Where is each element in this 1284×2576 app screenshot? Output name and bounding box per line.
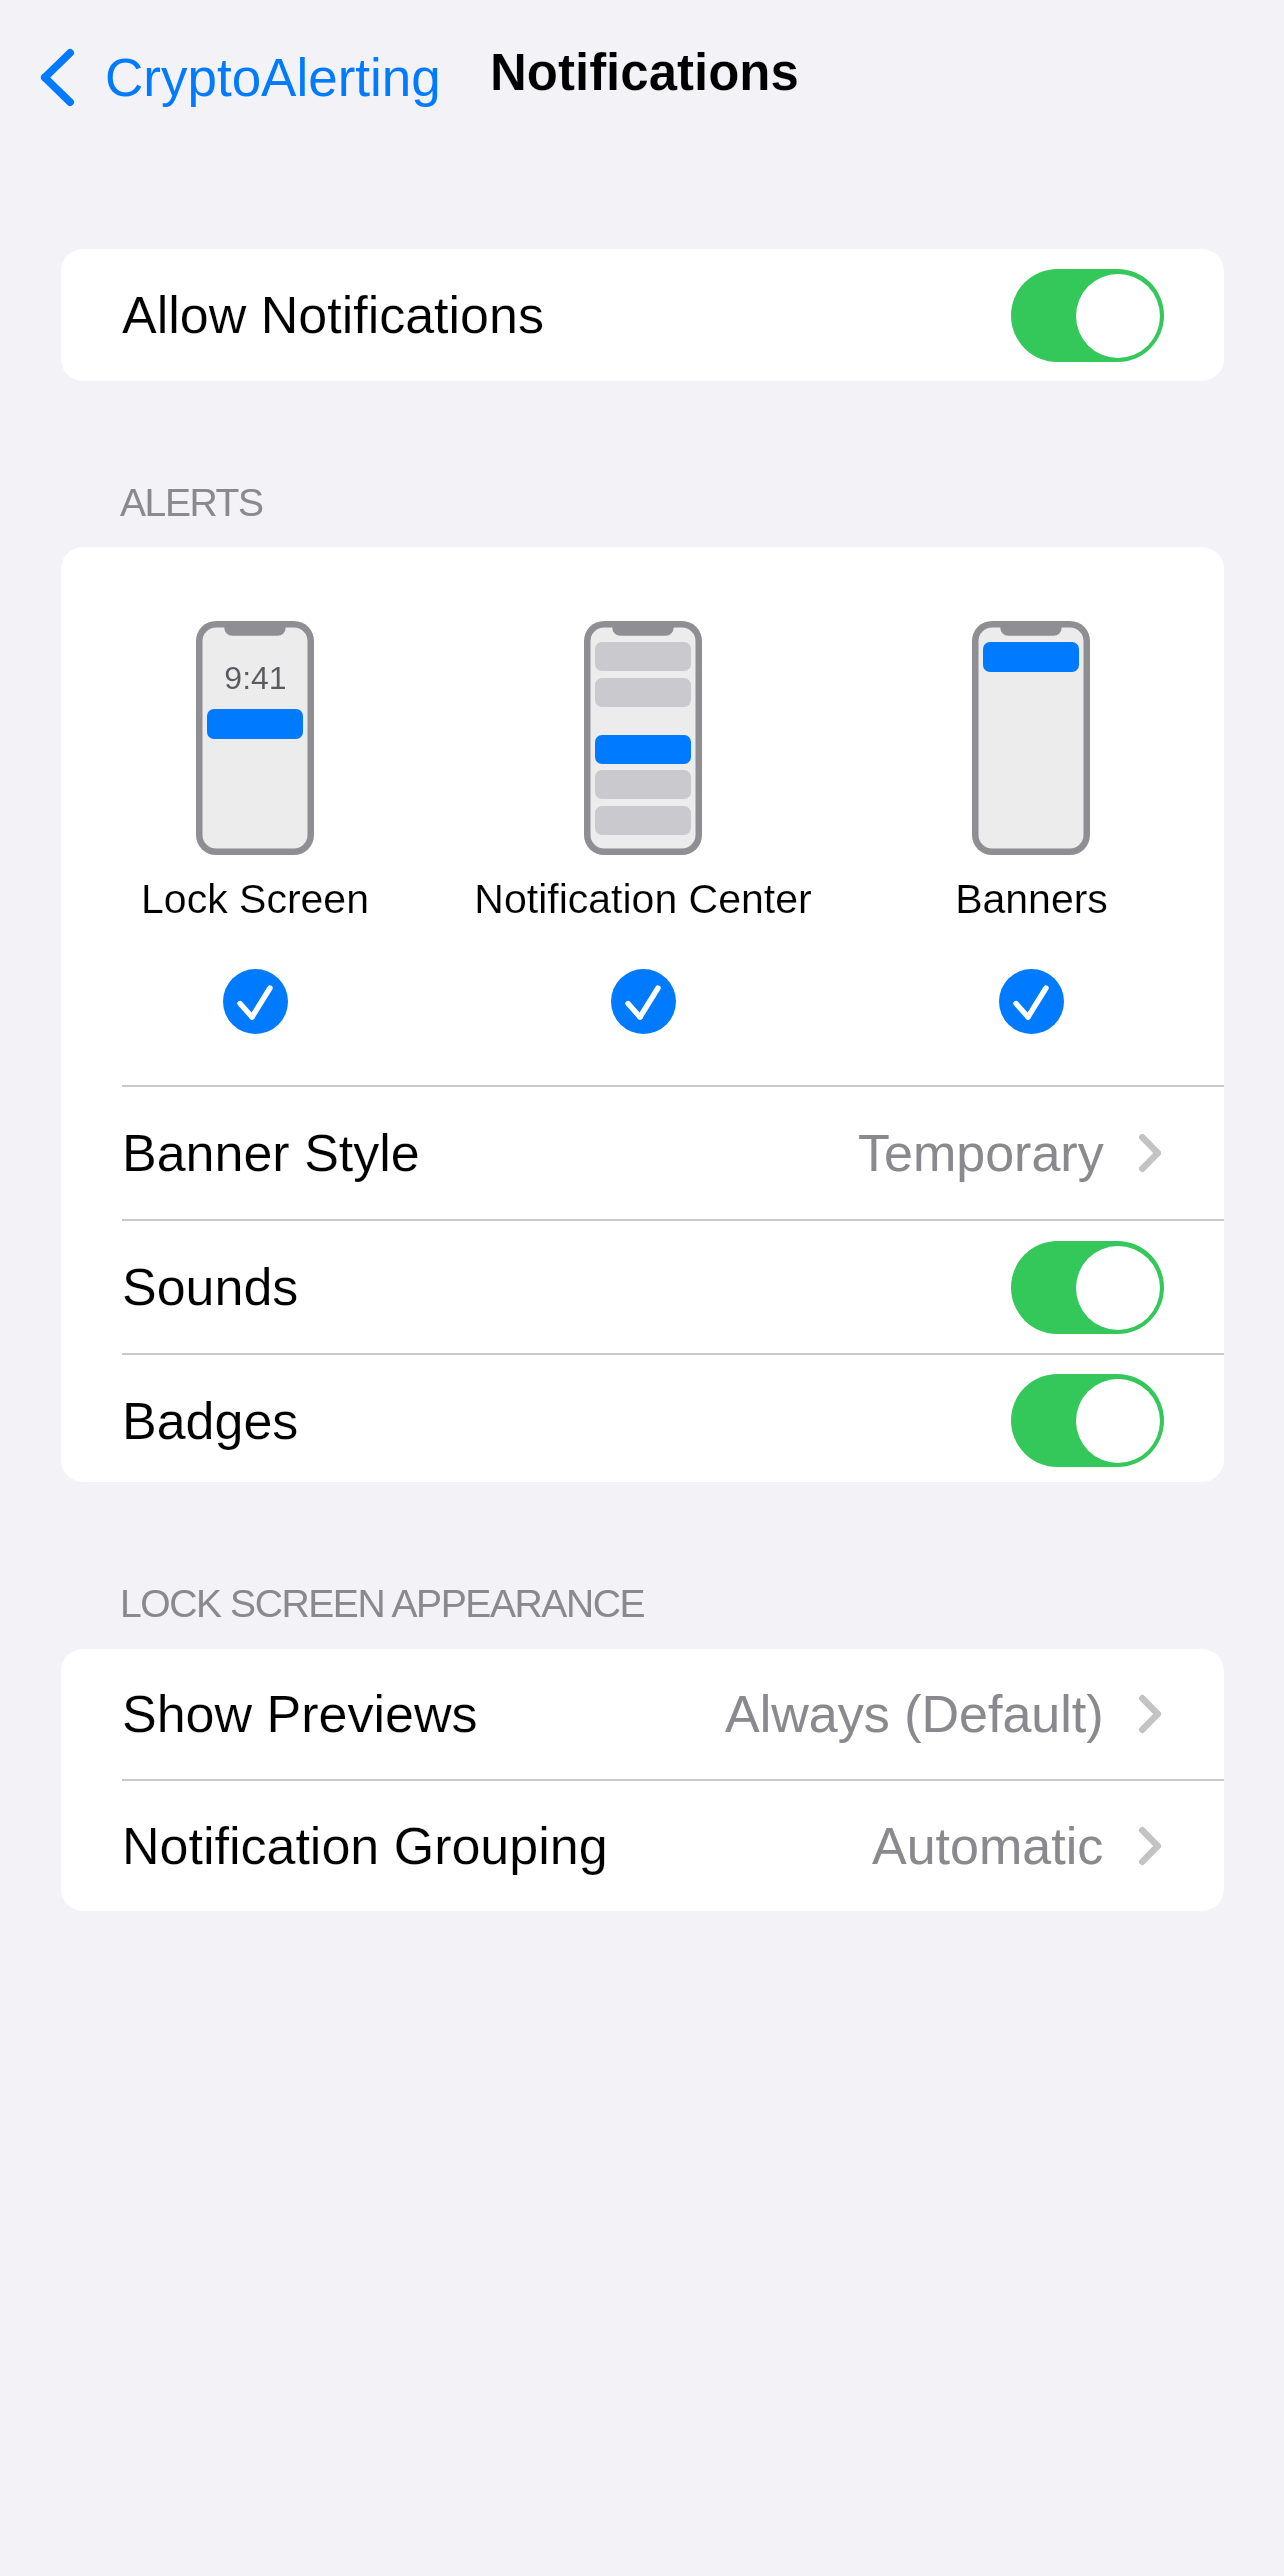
button[interactable]: Banner Style — [61, 1087, 1224, 1219]
staticText: 9:41 — [224, 660, 287, 696]
staticText: Banner Style — [122, 1124, 420, 1182]
staticText: Notifications — [490, 44, 799, 101]
staticText: Badges — [122, 1392, 299, 1450]
staticText: Notification Center — [474, 876, 812, 922]
button[interactable]: Badges — [61, 1355, 1224, 1482]
button[interactable]: Show Previews — [61, 1649, 1224, 1779]
button[interactable]: Sounds — [61, 1221, 1224, 1353]
button[interactable]: Allow Notifications — [61, 249, 1224, 381]
button[interactable]: Notification Grouping — [61, 1781, 1224, 1911]
staticText: Temporary — [858, 1124, 1104, 1182]
staticText: Always (Default) — [725, 1685, 1104, 1743]
staticText: Sounds — [122, 1258, 299, 1316]
staticText: Lock Screen — [141, 876, 369, 922]
staticText: LOCK SCREEN APPEARANCE — [120, 1582, 645, 1626]
button[interactable]: Lock Screen — [61, 607, 449, 1057]
staticText: Notification Grouping — [122, 1817, 608, 1875]
button[interactable]: Banners — [837, 607, 1224, 1057]
staticText: Show Previews — [122, 1685, 478, 1743]
button[interactable]: Badges — [1011, 1374, 1164, 1467]
staticText: Banners — [955, 876, 1108, 922]
staticText: Allow Notifications — [122, 286, 544, 344]
staticText: CryptoAlerting — [105, 48, 441, 107]
staticText: Automatic — [872, 1817, 1104, 1875]
button[interactable]: Sounds — [1011, 1241, 1164, 1334]
button[interactable]: Notification Center — [449, 607, 837, 1057]
button[interactable]: Allow Notifications — [1011, 269, 1164, 362]
button[interactable]: Back to CryptoAlerting — [25, 42, 451, 113]
staticText: ALERTS — [120, 481, 263, 525]
